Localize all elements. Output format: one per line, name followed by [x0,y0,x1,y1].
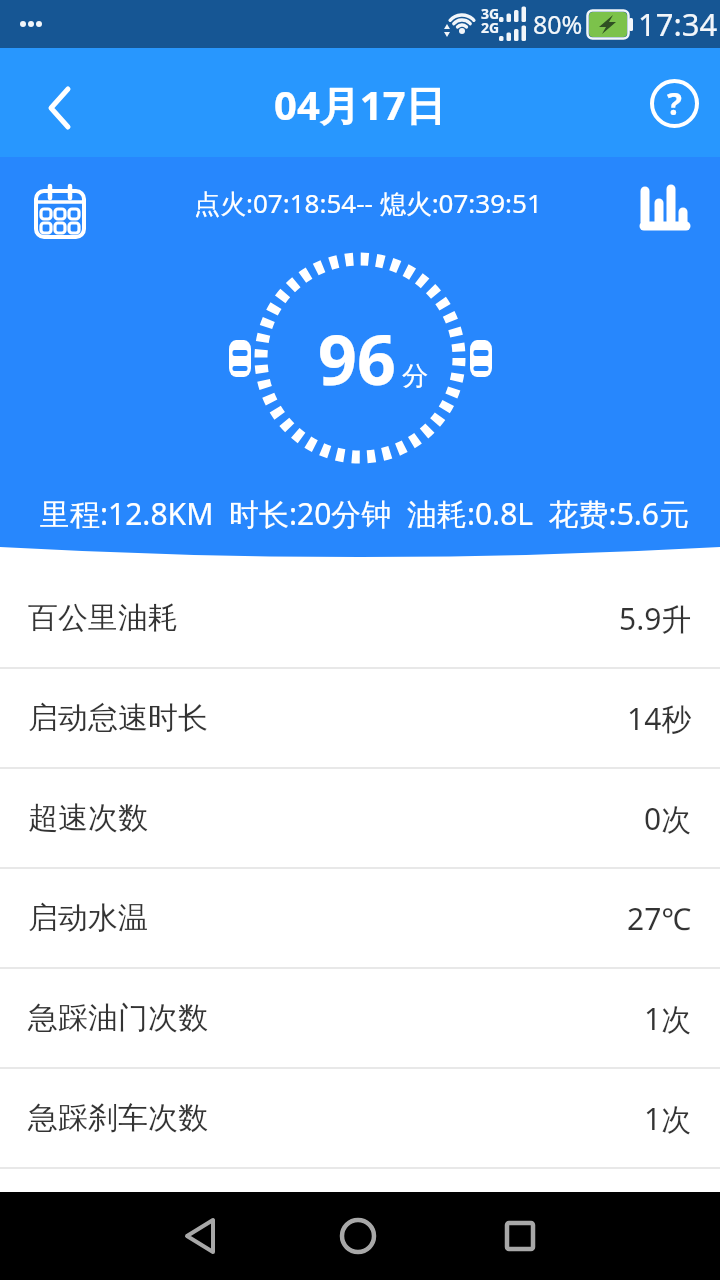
button[interactable]: 启动怠速时长 [0,669,720,769]
staticText: 急踩刹车次数 [28,1099,208,1137]
button[interactable] [334,1212,382,1260]
button[interactable]: 启动水温 [0,869,720,969]
staticText: 百公里油耗 [28,599,178,637]
staticText: ? [667,82,682,124]
button[interactable] [34,184,86,240]
button[interactable] [496,1212,544,1260]
staticText: 80% [533,7,583,41]
button[interactable] [638,182,692,232]
staticText: 5.9升 [619,598,692,639]
staticText: 超速次数 [28,799,148,837]
staticText: 3G [481,4,500,23]
button[interactable]: 百公里油耗 [0,569,720,669]
button[interactable]: ? [645,74,703,132]
staticText: 启动怠速时长 [28,699,208,737]
staticText: 1次 [644,998,692,1039]
button[interactable] [176,1212,224,1260]
staticText: 2G [481,18,500,37]
staticText: 里程:12.8KM 时长:20分钟 油耗:0.8L 花费:5.6元 [40,493,690,534]
staticText: 分 [402,360,428,393]
staticText: 04月17日 [274,77,446,132]
button[interactable]: 急踩刹车次数 [0,1069,720,1169]
staticText: 1次 [644,1098,692,1139]
button[interactable]: 急踩油门次数 [0,969,720,1069]
button[interactable]: 超速次数 [0,769,720,869]
staticText: 启动水温 [28,899,148,937]
staticText: 17:34 [638,3,718,45]
staticText: 急踩油门次数 [28,999,208,1037]
staticText: 27℃ [627,898,692,939]
staticText: 0次 [644,798,692,839]
staticText: 14秒 [627,698,692,739]
button[interactable] [30,78,90,138]
staticText: 96 [318,312,396,405]
staticText: 点火:07:18:54-- 熄火:07:39:51 [194,185,542,221]
